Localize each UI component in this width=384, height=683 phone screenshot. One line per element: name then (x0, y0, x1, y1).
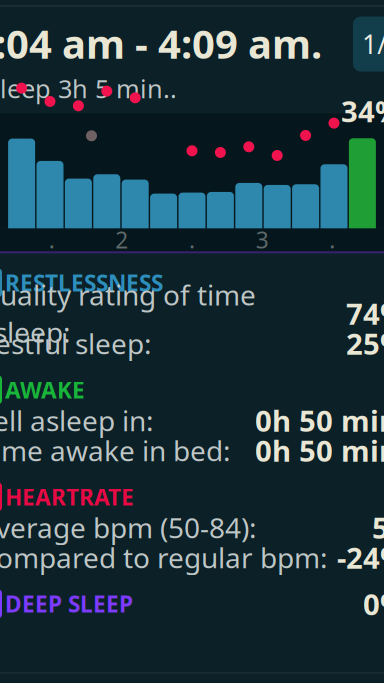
staticText: Time awake in bed: (0, 432, 231, 469)
staticText: 0h 50 min. (255, 401, 384, 440)
staticText: Quality rating of time asleep: (0, 276, 256, 350)
staticText: Asleep 3h 5 min.. (0, 72, 177, 105)
staticText: HEARTRATE (5, 482, 134, 512)
staticText: AWAKE (5, 375, 85, 405)
staticText: . (49, 225, 55, 255)
staticText: Average bpm (50-84): (0, 509, 257, 546)
staticText: . (189, 225, 195, 255)
staticText: 1:04 am - 4:09 am. (0, 17, 322, 70)
staticText: 0% (363, 584, 384, 623)
staticText: RESTLESSNESS (5, 268, 163, 298)
staticText: 3 (256, 225, 269, 255)
staticText: Restful sleep: (0, 325, 152, 362)
staticText: 25% (346, 324, 384, 363)
staticText: . (329, 225, 335, 255)
staticText: Fell asleep in: (0, 402, 154, 439)
staticText: 74% (346, 294, 384, 333)
button[interactable]: 1/2 (353, 17, 384, 72)
staticText: -24% (337, 538, 384, 577)
staticText: 34% (341, 91, 384, 130)
staticText: 58 (372, 508, 384, 547)
staticText: 0h 50 min. (255, 431, 384, 470)
staticText: 2 (115, 225, 128, 255)
staticText: Compared to regular bpm: (0, 539, 328, 576)
staticText: 1/2 (362, 26, 384, 62)
staticText: DEEP SLEEP (5, 589, 133, 619)
